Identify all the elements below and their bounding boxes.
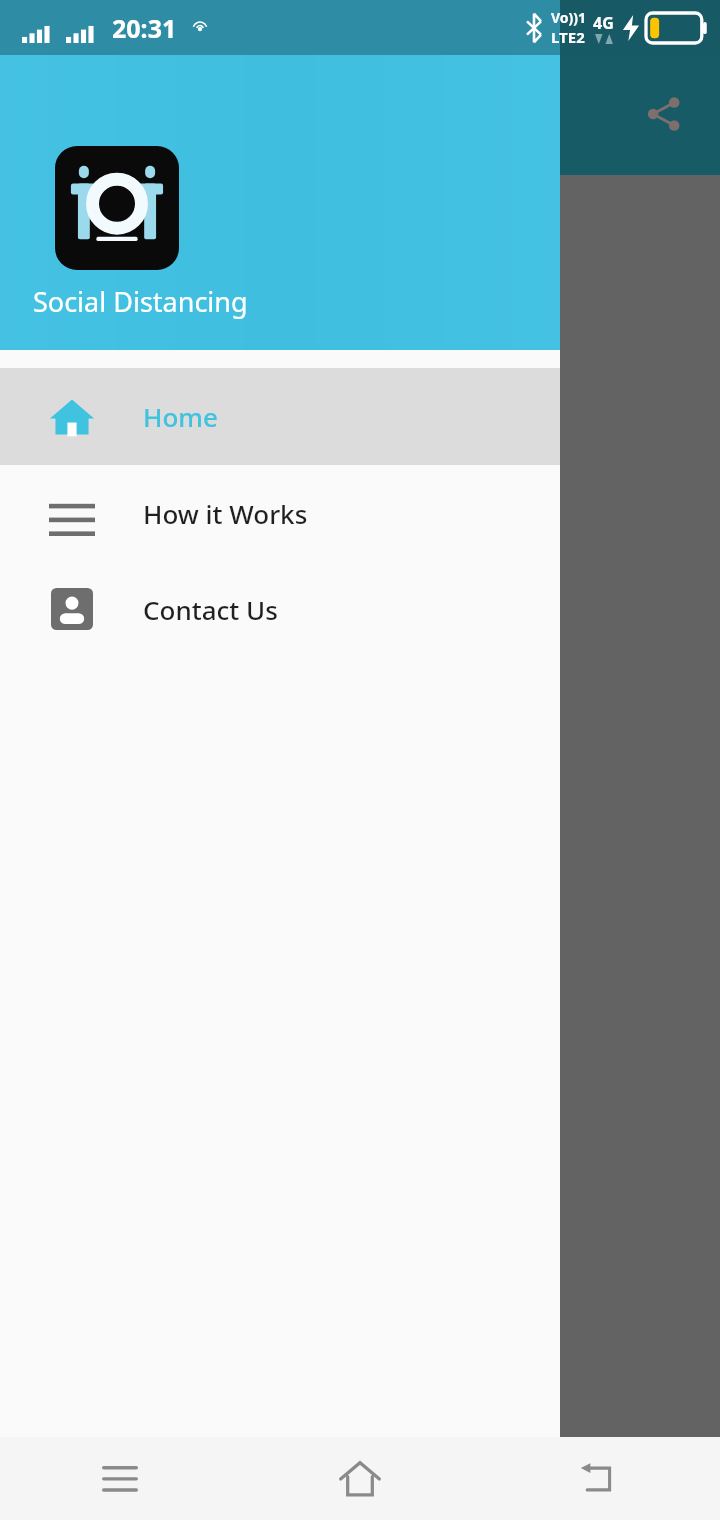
- button[interactable]: Share: [628, 78, 700, 150]
- staticText: Contact Us: [143, 592, 278, 627]
- staticText: Vo))1: [551, 8, 587, 27]
- button[interactable]: Home: [240, 1437, 480, 1520]
- staticText: How it Works: [143, 496, 308, 531]
- staticText: Home: [143, 399, 218, 434]
- staticText: LTE2: [551, 27, 585, 47]
- staticText: 4G: [593, 12, 614, 34]
- staticText: 20:31: [112, 11, 177, 45]
- button[interactable]: How it Works: [0, 465, 560, 561]
- button[interactable]: Home: [0, 368, 560, 465]
- button[interactable]: Contact Us: [0, 561, 560, 657]
- staticText: Social Distancing: [33, 283, 248, 320]
- button[interactable]: Back: [480, 1437, 720, 1520]
- button[interactable]: Recents: [0, 1437, 240, 1520]
